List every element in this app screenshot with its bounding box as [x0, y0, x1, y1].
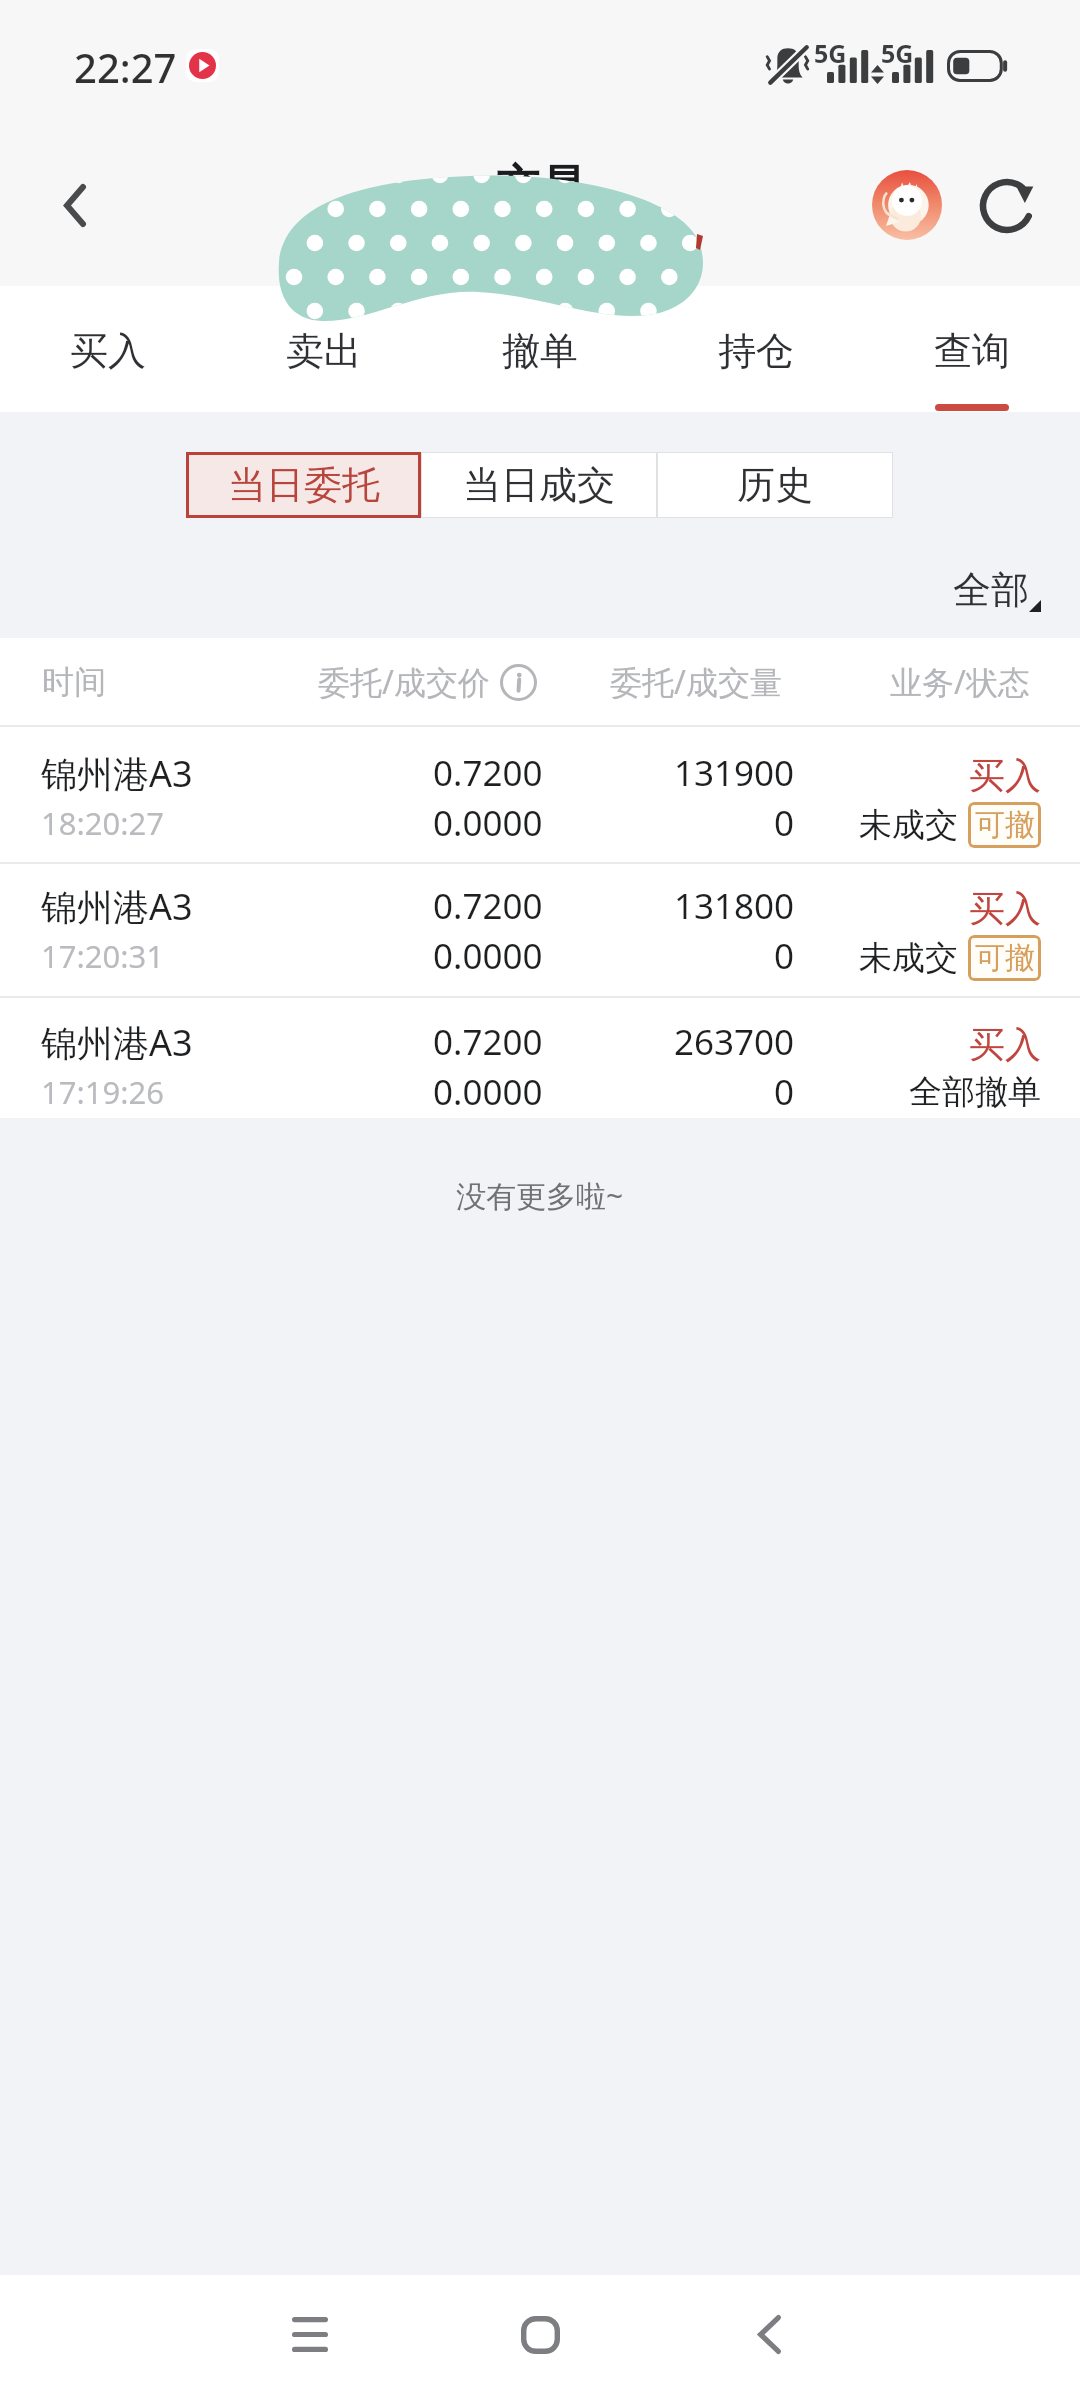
staticText: 可撤 [975, 806, 1035, 844]
staticText: 锦州港A3 [41, 749, 193, 798]
button[interactable]: 持仓 [648, 286, 864, 412]
button[interactable]: 全部 [953, 564, 1041, 632]
staticText: 0.0000 [433, 799, 543, 847]
staticText: 锦州港A3 [41, 882, 193, 931]
staticText: 买入 [70, 327, 146, 375]
button[interactable]: 当日成交 [421, 452, 657, 518]
button[interactable]: Recent apps [240, 2275, 380, 2400]
staticText: 没有更多啦~ [456, 1175, 624, 1216]
staticText: 全部撤单 [909, 1071, 1041, 1113]
button[interactable]: Home [470, 2272, 610, 2397]
staticText: 交易 [496, 159, 584, 214]
staticText: 锦州港A3 [41, 1018, 193, 1067]
staticText: 0 [774, 1068, 795, 1116]
staticText: 5G [814, 36, 847, 70]
button[interactable]: 当日委托 [186, 452, 421, 518]
staticText: 131800 [674, 882, 795, 930]
staticText: 全部 [953, 566, 1029, 614]
staticText: 5G [881, 36, 914, 70]
staticText: 委托/成交价 [318, 660, 490, 704]
staticText: 22:27 [74, 40, 177, 94]
staticText: 历史 [737, 461, 813, 509]
staticText: 0.7200 [433, 1018, 543, 1066]
staticText: 持仓 [718, 327, 794, 375]
staticText: 当日委托 [228, 461, 380, 509]
staticText: 263700 [674, 1018, 795, 1066]
staticText: 买入 [969, 886, 1041, 931]
staticText: 业务/状态 [890, 660, 1030, 704]
staticText: 当日成交 [463, 461, 615, 509]
staticText: 买入 [969, 1022, 1041, 1067]
button[interactable]: 可撤 [968, 802, 1041, 848]
button[interactable]: 历史 [657, 452, 893, 518]
staticText: 0 [774, 932, 795, 980]
staticText: 查询 [934, 327, 1010, 375]
staticText: 委托/成交量 [610, 660, 782, 704]
button[interactable]: 查询 [864, 286, 1080, 412]
staticText: 0.0000 [433, 932, 543, 980]
button[interactable]: Profile [862, 160, 952, 250]
staticText: 0.0000 [433, 1068, 543, 1116]
button[interactable]: 锦州港A3 [0, 725, 1080, 862]
staticText: 卖出 [286, 327, 362, 375]
staticText: 撤单 [502, 327, 578, 375]
staticText: 可撤 [975, 939, 1035, 977]
button[interactable]: Back [699, 2272, 839, 2397]
staticText: 131900 [674, 749, 795, 797]
staticText: 18:20:27 [41, 802, 165, 844]
staticText: 未成交 [859, 804, 958, 846]
button[interactable]: 撤单 [432, 286, 648, 412]
button[interactable]: Refresh [962, 160, 1058, 252]
button[interactable]: 锦州港A3 [0, 996, 1080, 1118]
staticText: 0.7200 [433, 882, 543, 930]
button[interactable]: Back [12, 140, 132, 270]
button[interactable]: 可撤 [968, 935, 1041, 981]
staticText: 17:19:26 [41, 1071, 165, 1113]
staticText: 0 [774, 799, 795, 847]
staticText: 买入 [969, 753, 1041, 798]
button[interactable]: 卖出 [216, 286, 432, 412]
button[interactable]: 锦州港A3 [0, 862, 1080, 996]
staticText: 17:20:31 [41, 935, 165, 977]
staticText: 时间 [42, 662, 106, 702]
staticText: 未成交 [859, 937, 958, 979]
staticText: 0.7200 [433, 749, 543, 797]
button[interactable]: 买入 [0, 286, 216, 412]
